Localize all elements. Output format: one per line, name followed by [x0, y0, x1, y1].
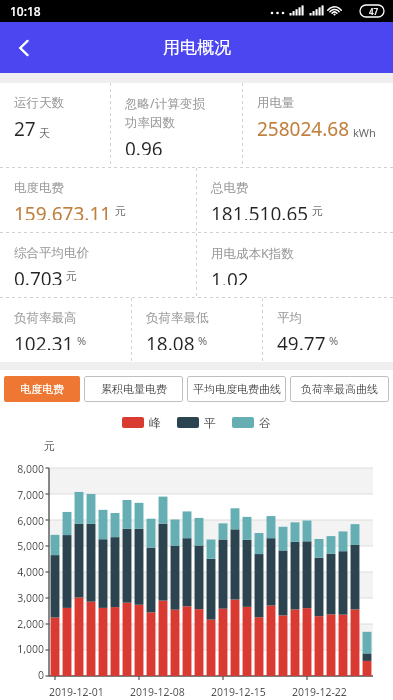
staticText: 2,000 — [17, 617, 44, 631]
staticText: 平 — [204, 415, 216, 430]
button[interactable]: 电度电费 — [4, 376, 80, 402]
staticText: 元 — [66, 269, 77, 283]
staticText: 0 — [37, 668, 44, 682]
staticText: 0.703 — [14, 266, 63, 285]
staticText: 27 — [14, 116, 36, 142]
staticText: % — [77, 333, 87, 348]
staticText: 忽略/计算变损 功率因数 — [125, 95, 205, 131]
staticText: 1.02 — [211, 267, 249, 285]
staticText: % — [198, 333, 208, 348]
staticText: 181,510.65 — [211, 201, 309, 220]
staticText: 用电概况 — [163, 37, 231, 58]
staticText: 0.96 — [125, 136, 163, 155]
staticText: 1,000 — [17, 642, 44, 656]
staticText: 天 — [39, 126, 50, 140]
staticText: 102.31 — [14, 331, 74, 350]
staticText: 18.08 — [146, 331, 195, 350]
staticText: 用电量 — [257, 95, 295, 111]
staticText: 5,000 — [17, 539, 44, 553]
staticText: 2019-12-08 — [130, 685, 185, 699]
button[interactable] — [232, 417, 254, 428]
staticText: 电度电费 — [14, 180, 64, 196]
button[interactable]: Back — [0, 24, 48, 72]
staticText: 2019-12-22 — [292, 685, 347, 699]
staticText: 159,673.11 — [14, 201, 112, 220]
staticText: 平均 — [277, 310, 302, 326]
staticText: 谷 — [259, 415, 271, 430]
staticText: 用电成本K指数 — [211, 245, 294, 262]
staticText: 258024.68 — [257, 116, 350, 142]
staticText: 6,000 — [17, 514, 44, 528]
button[interactable] — [177, 417, 199, 428]
staticText: 平均电度电费曲线 — [193, 382, 281, 396]
staticText: 47 — [369, 6, 379, 17]
staticText: 运行天数 — [14, 95, 64, 111]
staticText: 电度电费 — [20, 382, 64, 396]
staticText: 负荷率最低 — [146, 310, 209, 326]
staticText: 2019-12-15 — [211, 685, 266, 699]
staticText: 元 — [44, 439, 55, 453]
staticText: kWh — [353, 125, 376, 140]
staticText: 元 — [115, 204, 126, 218]
button[interactable]: 负荷率最高曲线 — [290, 376, 389, 402]
staticText: 元 — [312, 204, 323, 218]
staticText: % — [329, 333, 339, 348]
button[interactable]: 平均电度电费曲线 — [187, 376, 286, 402]
staticText: 2019-12-01 — [49, 685, 104, 699]
staticText: 10:18 — [10, 3, 41, 19]
staticText: 49.77 — [277, 331, 326, 350]
staticText: 负荷率最高 — [14, 310, 77, 326]
staticText: 累积电量电费 — [101, 382, 167, 396]
staticText: 总电费 — [211, 180, 249, 196]
staticText: 4,000 — [17, 565, 44, 579]
staticText: 3,000 — [17, 591, 44, 605]
button[interactable] — [122, 417, 144, 428]
staticText: 7,000 — [17, 488, 44, 502]
staticText: 峰 — [149, 415, 161, 430]
staticText: 负荷率最高曲线 — [301, 382, 378, 396]
button[interactable]: 累积电量电费 — [84, 376, 183, 402]
staticText: 8,000 — [17, 462, 44, 476]
staticText: 综合平均电价 — [14, 245, 89, 261]
